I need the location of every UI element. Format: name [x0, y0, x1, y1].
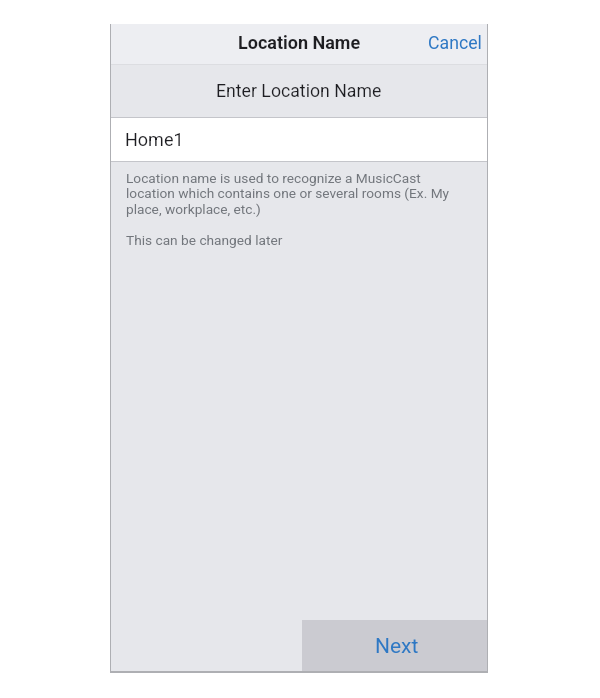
staticText: Enter Location Name [216, 81, 382, 102]
staticText: Cancel [428, 33, 482, 54]
staticText: This can be changed later [126, 232, 283, 248]
staticText: Home1 [125, 129, 184, 150]
button[interactable]: Home1 [110, 118, 488, 161]
staticText: Next [375, 634, 419, 659]
staticText: Location name is used to recognize a Mus… [126, 170, 458, 218]
button[interactable]: Cancel [416, 27, 488, 60]
button[interactable]: Next [302, 620, 488, 672]
staticText: Location Name [238, 32, 361, 53]
